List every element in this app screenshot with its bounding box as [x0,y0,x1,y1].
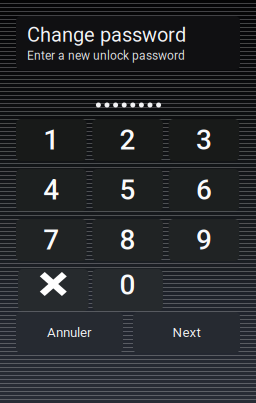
staticText: 9 [196,224,212,256]
button[interactable]: Annuler [16,312,123,353]
button[interactable]: 8 [92,219,163,261]
staticText: 5 [120,174,136,206]
button[interactable]: 0 [92,269,163,311]
staticText: 8 [120,224,136,256]
button[interactable]: 2 [92,119,163,161]
staticText: 1 [43,124,59,156]
staticText: 4 [43,174,59,206]
button[interactable]: 6 [169,169,239,211]
staticText: Annuler [47,325,92,340]
staticText: Enter a new unlock password [27,49,185,63]
button[interactable]: 4 [16,169,87,211]
button[interactable]: 9 [169,219,239,261]
button[interactable]: 3 [169,119,239,161]
button[interactable]: 1 [16,119,87,161]
staticText: 3 [196,124,212,156]
staticText: Change password [27,23,186,47]
button[interactable]: 7 [16,219,87,261]
staticText: 6 [196,174,212,206]
staticText: 2 [120,124,136,156]
button[interactable]: Next [133,312,240,353]
button[interactable]: Delete [18,269,89,311]
button[interactable]: 5 [92,169,163,211]
staticText: Next [172,325,200,340]
staticText: 7 [43,224,59,256]
staticText: 0 [120,269,136,301]
